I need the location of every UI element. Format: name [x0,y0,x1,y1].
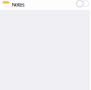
button[interactable]: Notes [2,0,25,8]
staticText: Notes [11,1,25,8]
button[interactable]: Recent windows [77,0,89,10]
